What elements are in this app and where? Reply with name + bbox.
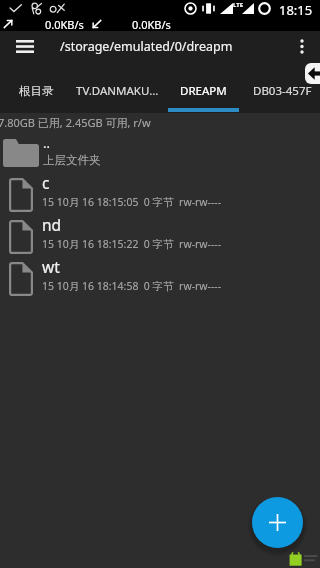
staticText: 15 10月 16 18:15:05 0 字节 rw-rw---- <box>42 195 222 209</box>
staticText: 7.80GB 已用, 2.45GB 可用, r/w <box>0 115 151 130</box>
staticText: LTE <box>233 1 244 9</box>
staticText: 上层文件夹 <box>43 153 101 167</box>
staticText: DB03-457F <box>253 83 312 99</box>
button[interactable]: .. <box>0 131 320 174</box>
staticText: 15 10月 16 18:14:58 0 字节 rw-rw---- <box>42 279 222 293</box>
button[interactable]: DREAPM <box>162 61 244 113</box>
staticText: 根目录 <box>19 84 54 98</box>
staticText: c <box>42 172 50 193</box>
button[interactable]: TV.DANMAKU... <box>72 61 162 113</box>
staticText: 0.0KB/s <box>45 17 84 31</box>
staticText: wt <box>42 256 60 277</box>
staticText: DREAPM <box>180 83 227 99</box>
button[interactable]: wt <box>0 258 320 300</box>
button[interactable]: nd <box>0 216 320 258</box>
staticText: 18:15 <box>279 1 313 18</box>
button[interactable]: Open navigation menu <box>0 31 50 61</box>
button[interactable]: DB03-457F <box>244 61 320 113</box>
button[interactable]: Add <box>252 497 303 548</box>
button[interactable]: Back <box>305 63 320 84</box>
staticText: /storage/emulated/0/dreapm <box>60 38 233 55</box>
staticText: TV.DANMAKU... <box>76 83 159 99</box>
staticText: 0.0KB/s <box>132 17 171 31</box>
staticText: 15 10月 16 18:15:22 0 字节 rw-rw---- <box>42 237 222 251</box>
staticText: .. <box>43 134 50 152</box>
button[interactable]: More options <box>284 31 320 61</box>
staticText: nd <box>42 214 62 235</box>
button[interactable]: c <box>0 174 320 216</box>
button[interactable]: 根目录 <box>0 61 72 113</box>
